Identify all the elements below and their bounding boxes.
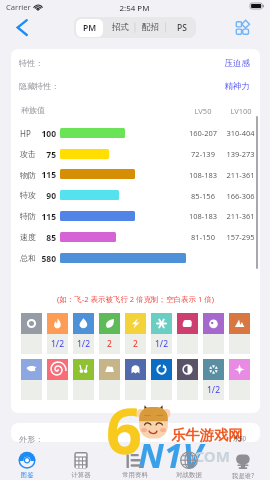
button[interactable]: 配招 [135,17,166,38]
staticText: 6 [106,387,166,473]
button[interactable]: 招式 [105,17,136,38]
button[interactable]: Type 17 [203,359,224,380]
button[interactable]: 常用资料 [108,443,162,480]
staticText: .COM [191,446,251,466]
staticText: 85 [36,232,56,244]
staticText: 108-183 [183,170,223,180]
staticText: 100 [36,128,56,140]
staticText: 压迫感 [170,58,250,69]
staticText: LV100 [221,106,261,116]
staticText: 2:54 PM [110,3,159,14]
staticText: 90 [36,190,56,202]
staticText: 特防 [20,211,46,221]
staticText: 310-404 [220,128,261,138]
staticText: (如：飞-2 表示被飞行 2 倍克制；空白表示 1 倍) [11,294,260,304]
button[interactable]: Type 11 [47,359,68,380]
staticText: 81-150 [183,232,223,242]
staticText: 种族值 [21,105,101,115]
staticText: 166-306 [220,191,261,201]
staticText: 图鉴 [0,471,54,479]
staticText: LV50 [185,106,221,116]
button[interactable]: Type 10 [21,359,42,380]
staticText: 我是谁? [216,471,270,480]
button[interactable]: PM [74,17,105,38]
staticText: 特攻 [20,190,46,200]
button[interactable]: 对战数据 [162,443,216,480]
staticText: 外形： [19,434,99,444]
staticText: 139-273 [220,149,261,159]
button[interactable]: Type 6 [151,313,172,334]
staticText: 1/2 [77,338,90,350]
button[interactable]: PS [166,17,196,38]
button[interactable]: Type 9 [229,313,250,334]
staticText: 特性： [19,58,99,68]
button[interactable]: 我是谁? [216,443,270,480]
staticText: N1V [138,432,208,478]
button[interactable]: Type 5 [125,313,146,334]
button[interactable]: Type 16 [177,359,198,380]
staticText: PM [83,22,97,34]
staticText: 配招 [142,22,159,33]
button[interactable]: Type 13 [99,359,120,380]
staticText: 211-361 [220,211,261,221]
button[interactable]: Type 2 [47,313,68,334]
staticText: 160-207 [183,128,223,138]
staticText: 常用资料 [108,471,162,479]
staticText: 1/2 [207,384,220,396]
staticText: 水印 [233,435,263,443]
staticText: 对战数据 [162,471,216,479]
staticText: 211-361 [220,170,261,180]
staticText: 2 [133,338,138,350]
button[interactable]: Type 3 [73,313,94,334]
staticText: 85-156 [183,191,223,201]
staticText: 计算器 [54,471,108,479]
staticText: 115 [36,169,56,181]
staticText: 乐牛游戏网 [171,426,261,444]
staticText: 157-295 [220,232,261,242]
button[interactable]: 计算器 [54,443,108,480]
button[interactable]: Type 14 [125,359,146,380]
staticText: 108-183 [183,211,223,221]
button[interactable]: Type 8 [203,313,224,334]
staticText: HP [20,128,46,139]
staticText: 招式 [112,22,129,33]
button[interactable]: Type 12 [73,359,94,380]
staticText: 隐藏特性： [19,81,99,91]
button[interactable]: Type 1 [21,313,42,334]
button[interactable]: Type 4 [99,313,120,334]
staticText: 总和 [20,253,46,263]
staticText: Carrier [6,2,46,12]
staticText: 精神力 [170,81,250,92]
staticText: 速度 [20,232,46,242]
button[interactable]: Back [12,17,34,39]
button[interactable]: Type 15 [151,359,172,380]
staticText: 攻击 [20,149,46,159]
staticText: 1/2 [51,338,64,350]
staticText: 2 [107,338,112,350]
staticText: 115 [36,211,56,223]
staticText: PS [177,22,187,34]
button[interactable]: Type 7 [177,313,198,334]
staticText: 物防 [20,170,46,180]
staticText: 72-139 [183,149,223,159]
button[interactable]: Type 18 [229,359,250,380]
button[interactable]: Grid view [232,18,254,38]
button[interactable]: 图鉴 [0,443,54,480]
staticText: 1/2 [155,338,168,350]
staticText: 75 [36,149,56,161]
staticText: 580 [36,253,56,265]
